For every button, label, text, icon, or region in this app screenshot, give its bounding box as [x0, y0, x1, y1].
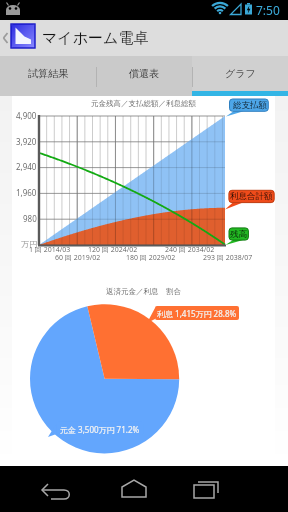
staticText: グラフ — [225, 67, 256, 80]
staticText: マイホーム電卓 — [42, 29, 149, 48]
button[interactable]: Back — [38, 466, 100, 512]
staticText: 利息 1,415万円 28.8% — [157, 308, 237, 319]
staticText: 償還表 — [129, 67, 159, 80]
staticText: 1,960 — [16, 187, 37, 198]
button[interactable]: Home — [113, 466, 175, 512]
staticText: 元金 3,500万円 71.2% — [60, 424, 140, 435]
staticText: 120 回 2024/02 — [88, 245, 138, 255]
staticText: 4,900 — [16, 110, 37, 121]
staticText: 残高 — [230, 229, 247, 240]
staticText: 1 回 2014/03 — [29, 245, 71, 255]
button[interactable]: 試算結果 — [0, 56, 96, 91]
staticText: 293 回 2038/07 — [203, 253, 253, 263]
staticText: 総支払額 — [233, 100, 267, 111]
staticText: 240 回 2034/02 — [165, 245, 215, 255]
staticText: 7:50 — [256, 2, 280, 18]
button[interactable]: Recents — [188, 466, 250, 512]
staticText: 60 回 2019/02 — [55, 253, 101, 263]
staticText: 万円 — [21, 239, 37, 249]
staticText: 返済元金／利息 割合 — [106, 286, 181, 296]
staticText: 2,940 — [16, 161, 37, 172]
staticText: 980 — [23, 213, 37, 224]
button[interactable]: 償還表 — [96, 56, 192, 91]
staticText: 試算結果 — [28, 67, 68, 80]
staticText: 180 回 2029/02 — [126, 253, 176, 263]
staticText: 元金残高／支払総額／利息総額 — [91, 99, 196, 108]
staticText: 利息合計額 — [230, 191, 273, 202]
staticText: 3,920 — [16, 136, 37, 147]
button[interactable]: グラフ — [192, 56, 288, 91]
